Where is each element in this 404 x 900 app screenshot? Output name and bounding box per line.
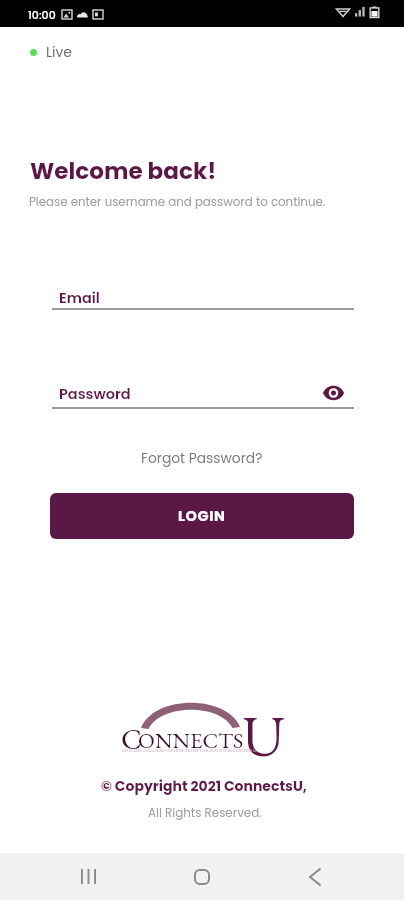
button[interactable]: Password	[52, 379, 354, 407]
staticText: Please enter username and password to co…	[29, 194, 326, 211]
button[interactable]: Forgot Password?	[135, 446, 269, 471]
button[interactable]: Email	[52, 283, 354, 311]
button[interactable]: Show password	[322, 382, 344, 404]
staticText: Email	[59, 288, 100, 308]
staticText: COLLEGE & ALUMNI CONNECTIONS THROUGH ONE…	[122, 748, 257, 753]
staticText: 10:00	[28, 7, 56, 22]
button[interactable]: Home	[177, 853, 226, 900]
button[interactable]: Recent apps	[64, 853, 113, 900]
staticText: LOGIN	[178, 506, 226, 526]
staticText: C	[121, 720, 142, 758]
button[interactable]: Back	[290, 853, 339, 900]
staticText: Welcome back!	[30, 155, 217, 187]
button[interactable]: Live	[30, 42, 73, 62]
button[interactable]: LOGIN	[50, 493, 354, 539]
staticText: Live	[46, 42, 73, 62]
staticText: Password	[59, 384, 131, 404]
staticText: U	[242, 698, 285, 760]
staticText: © Copyright 2021 ConnectsU,	[101, 776, 307, 796]
staticText: ONNECTS	[138, 726, 244, 755]
staticText: All Rights Reserved.	[148, 805, 262, 822]
